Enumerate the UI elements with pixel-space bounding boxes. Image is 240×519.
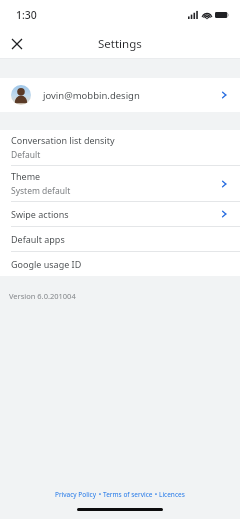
- button[interactable]: Privacy Policy: [55, 490, 97, 499]
- staticText: 1:30: [16, 8, 37, 22]
- staticText: Swipe actions: [11, 208, 69, 220]
- staticText: Version 6.0.201004: [9, 291, 76, 301]
- button[interactable]: Licences: [159, 490, 185, 499]
- staticText: Default: [11, 149, 41, 161]
- staticText: jovin@mobbin.design: [43, 89, 140, 102]
- button[interactable]: Swipe actions: [0, 202, 240, 226]
- staticText: Theme: [11, 170, 41, 182]
- staticText: •: [153, 490, 159, 499]
- staticText: Settings: [98, 36, 142, 52]
- button[interactable]: jovin@mobbin.design: [0, 78, 240, 112]
- staticText: Conversation list density: [11, 134, 115, 146]
- button[interactable]: Terms of service: [103, 490, 153, 499]
- button[interactable]: Default apps: [0, 227, 240, 251]
- button[interactable]: Theme: [0, 166, 240, 201]
- staticText: Google usage ID: [11, 258, 82, 270]
- button[interactable]: Conversation list density: [0, 130, 240, 165]
- button[interactable]: Google usage ID: [0, 252, 240, 276]
- staticText: System default: [11, 185, 71, 197]
- staticText: •: [97, 490, 103, 499]
- button[interactable]: Close: [5, 32, 29, 56]
- staticText: Default apps: [11, 233, 65, 245]
